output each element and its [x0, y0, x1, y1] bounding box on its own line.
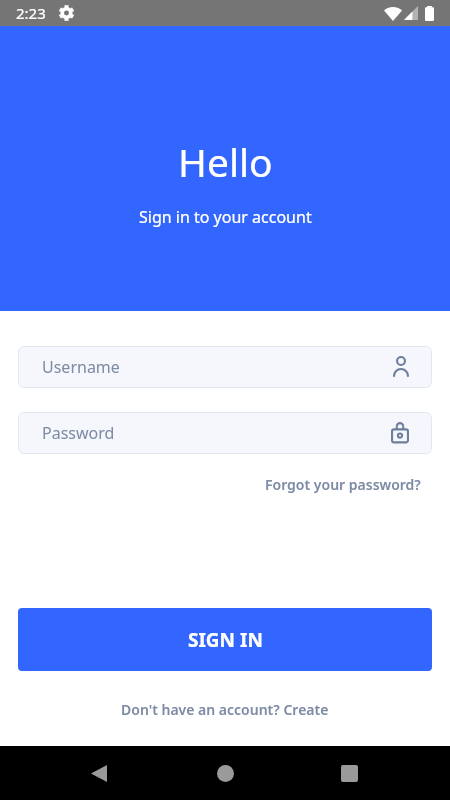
button[interactable]: Username: [18, 346, 432, 388]
staticText: Hello: [178, 135, 273, 188]
staticText: Don't have an account? Create: [121, 700, 329, 719]
button[interactable]: Recent apps: [321, 746, 377, 800]
staticText: Forgot your password?: [265, 475, 421, 494]
staticText: SIGN IN: [188, 627, 263, 653]
staticText: 2:23: [16, 3, 46, 23]
button[interactable]: Don't have an account? Create: [115, 695, 335, 724]
staticText: Username: [42, 356, 393, 378]
button[interactable]: Home: [197, 746, 253, 800]
button[interactable]: Forgot your password?: [261, 470, 425, 499]
staticText: Password: [42, 422, 391, 444]
button[interactable]: Password: [18, 412, 432, 454]
staticText: Sign in to your account: [139, 206, 312, 228]
button[interactable]: Back: [71, 746, 127, 800]
button[interactable]: SIGN IN: [18, 608, 432, 671]
